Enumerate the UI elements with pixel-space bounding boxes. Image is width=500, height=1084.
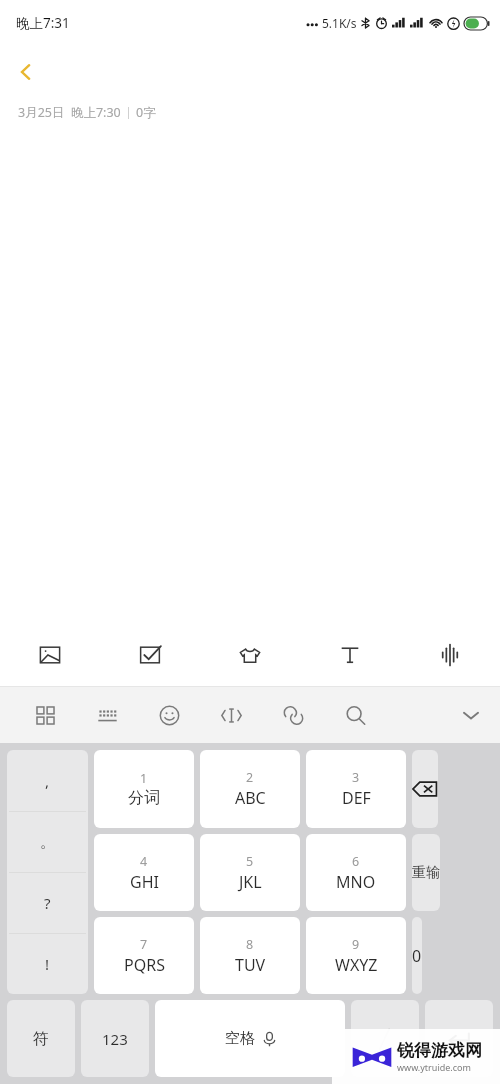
staticText: DEF (342, 787, 371, 809)
button[interactable] (412, 750, 438, 828)
button[interactable]: Search (324, 687, 386, 743)
staticText: ABC (235, 787, 266, 809)
button[interactable]: Text format (300, 624, 400, 686)
button[interactable]: 5 (200, 834, 300, 911)
button[interactable]: 8 (200, 917, 300, 994)
button[interactable]: 2 (200, 750, 300, 828)
staticText: PQRS (124, 954, 165, 976)
staticText: 123 (102, 1029, 128, 1049)
staticText: 晚上7:31 (16, 14, 70, 32)
button[interactable]: Image (0, 624, 100, 686)
button[interactable]: Emoji (138, 687, 200, 743)
button[interactable]: 空格 (155, 1000, 345, 1077)
button[interactable]: ! (7, 934, 88, 994)
button[interactable]: Checklist (100, 624, 200, 686)
staticText: 重输 (412, 864, 440, 882)
button[interactable]: , (7, 750, 88, 811)
staticText: 0字 (136, 104, 156, 121)
staticText: JKL (239, 871, 262, 893)
staticText: 4 (140, 853, 148, 870)
staticText: 6 (352, 853, 360, 870)
button[interactable]: 符 (7, 1000, 75, 1077)
staticText: 5 (246, 853, 254, 870)
staticText: 2 (246, 769, 254, 786)
button[interactable]: 。 (7, 812, 88, 872)
button[interactable]: 1 (94, 750, 194, 828)
staticText: 0 (412, 945, 422, 967)
button[interactable]: 7 (94, 917, 194, 994)
button[interactable]: 123 (81, 1000, 149, 1077)
button[interactable]: Back (0, 46, 52, 98)
staticText: 。 (40, 833, 55, 852)
button[interactable]: Style (200, 624, 300, 686)
button[interactable]: Clipboard (262, 687, 324, 743)
staticText: , (45, 771, 50, 791)
staticText: 9 (352, 936, 360, 953)
staticText: GHI (130, 871, 159, 893)
staticText: 5.1K/s (322, 15, 357, 31)
staticText: 符 (33, 1029, 49, 1049)
staticText: WXYZ (335, 954, 378, 976)
staticText: 3 (352, 769, 360, 786)
button[interactable]: Cursor (200, 687, 262, 743)
button[interactable]: Hide keyboard (442, 687, 500, 743)
staticText: MNO (336, 871, 376, 893)
button[interactable]: 4 (94, 834, 194, 911)
staticText: 3月25日 晚上7:30 (18, 104, 121, 121)
button[interactable]: Apps (14, 687, 76, 743)
button[interactable]: 0 (412, 917, 422, 994)
staticText: 锐得游戏网 (397, 1040, 482, 1061)
staticText: ? (44, 893, 51, 913)
staticText: ! (45, 954, 50, 974)
button[interactable] (351, 1000, 419, 1077)
button[interactable]: ? (7, 873, 88, 933)
staticText: www.ytruide.com (397, 1061, 471, 1073)
button[interactable]: 3 (306, 750, 406, 828)
button[interactable]: Voice (400, 624, 500, 686)
button[interactable]: 6 (306, 834, 406, 911)
staticText: 空格 (225, 1029, 255, 1048)
staticText: 分词 (128, 788, 160, 808)
button[interactable]: 9 (306, 917, 406, 994)
staticText: TUV (235, 954, 266, 976)
button[interactable]: 重输 (412, 834, 440, 911)
staticText: 8 (246, 936, 254, 953)
button[interactable]: Keyboard layout (76, 687, 138, 743)
staticText: 7 (140, 936, 148, 953)
button[interactable] (425, 1000, 493, 1077)
staticText: 1 (140, 770, 148, 787)
